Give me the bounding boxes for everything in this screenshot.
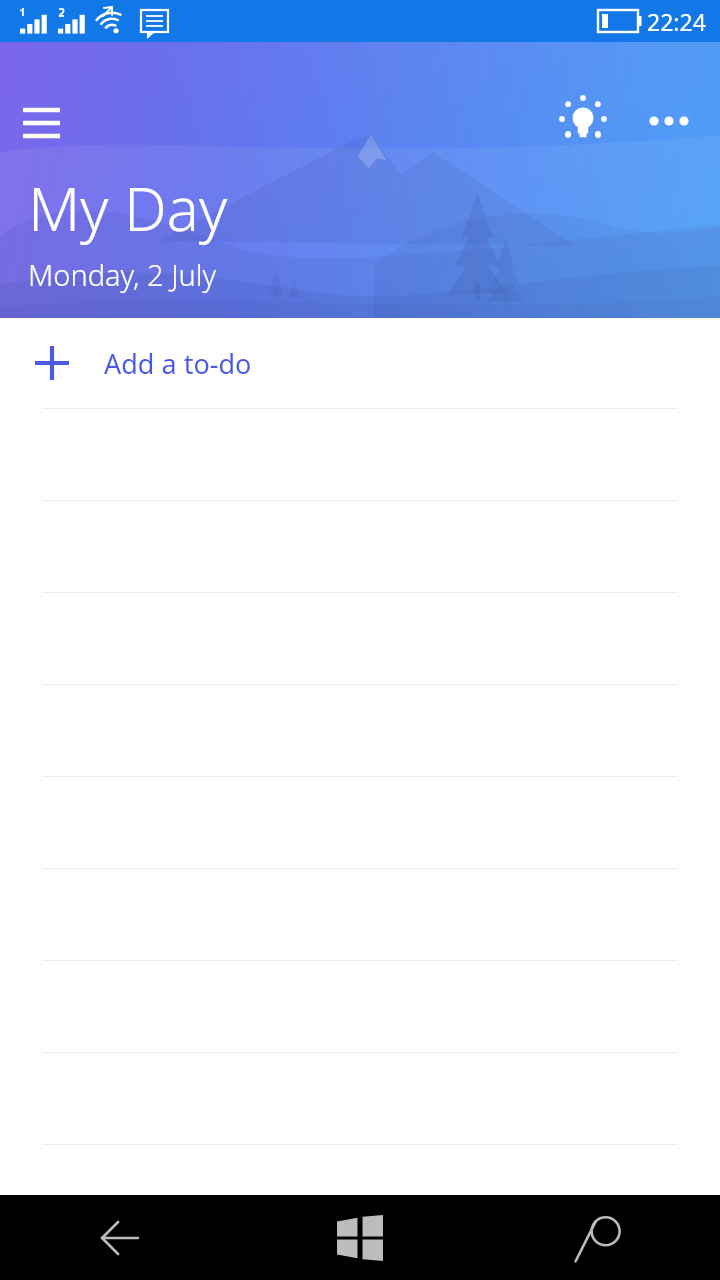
button[interactable]: Smart suggestions [552,90,614,152]
staticText: 22:24 [647,6,706,37]
staticText: My Day [28,167,228,249]
button[interactable]: Start [240,1195,480,1280]
staticText: Add a to-do [104,345,252,382]
staticText: Monday, 2 July [28,255,217,294]
button[interactable]: Add a to-do [0,318,720,408]
button[interactable]: Search [480,1195,720,1280]
button[interactable]: Menu [10,86,76,142]
button[interactable]: Back [0,1195,240,1280]
button[interactable]: More options [638,90,700,152]
